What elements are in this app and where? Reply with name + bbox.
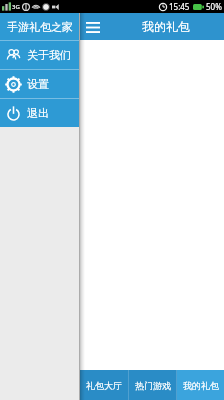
staticText: 15:45 [169,1,190,12]
staticText: 我的礼包 [142,19,190,34]
staticText: 关于我们 [27,48,71,62]
staticText: 退出 [27,106,49,120]
button[interactable]: 关于我们 [0,41,79,69]
staticText: 我的礼包 [183,380,219,391]
staticText: 热门游戏 [135,380,171,391]
staticText: 50% [206,1,222,12]
staticText: 设置 [27,77,49,91]
button[interactable]: 手游礼包之家 [0,13,79,40]
staticText: 3G [12,3,20,11]
button[interactable]: 设置 [0,70,79,98]
button[interactable]: Open navigation menu [80,14,106,40]
staticText: 礼包大厅 [86,380,122,391]
button[interactable]: 我的礼包 [177,370,224,400]
button[interactable]: 退出 [0,99,79,127]
button[interactable]: 热门游戏 [129,370,176,400]
staticText: 手游礼包之家 [7,20,73,34]
button[interactable]: 礼包大厅 [80,370,128,400]
